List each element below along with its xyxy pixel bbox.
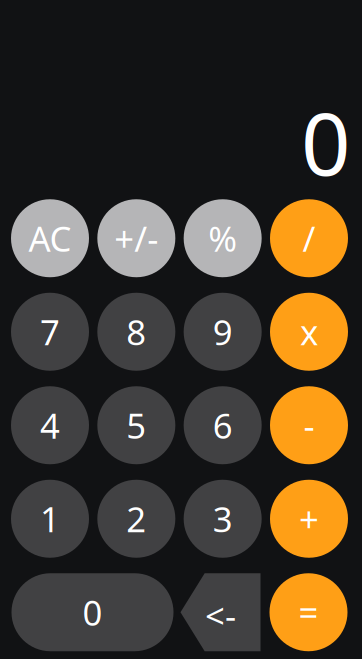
staticText: 3 <box>213 496 233 542</box>
button[interactable]: 0 <box>11 573 173 651</box>
button[interactable]: 2 <box>97 480 175 558</box>
button[interactable]: 7 <box>11 293 89 371</box>
staticText: +/- <box>114 215 158 261</box>
staticText: 6 <box>213 402 233 448</box>
button[interactable]: 8 <box>97 293 175 371</box>
staticText: x <box>300 309 318 355</box>
button[interactable]: 6 <box>184 386 262 464</box>
staticText: 1 <box>40 496 60 542</box>
staticText: <- <box>205 592 236 638</box>
staticText: / <box>302 215 315 261</box>
staticText: % <box>208 215 237 261</box>
button[interactable]: 4 <box>11 386 89 464</box>
button[interactable]: / <box>270 199 348 277</box>
button[interactable]: AC <box>11 199 89 277</box>
staticText: 0 <box>301 84 351 199</box>
staticText: 4 <box>40 402 60 448</box>
button[interactable]: - <box>270 386 348 464</box>
button[interactable]: = <box>269 573 347 651</box>
staticText: 7 <box>40 309 60 355</box>
button[interactable]: 3 <box>184 480 262 558</box>
staticText: 8 <box>126 309 146 355</box>
staticText: 5 <box>126 402 146 448</box>
staticText: 0 <box>82 589 102 635</box>
button[interactable]: 1 <box>11 480 89 558</box>
button[interactable]: 5 <box>97 386 175 464</box>
staticText: = <box>298 589 318 635</box>
button[interactable]: +/- <box>97 199 175 277</box>
button[interactable]: 9 <box>184 293 262 371</box>
button[interactable]: x <box>270 293 348 371</box>
button[interactable]: + <box>270 480 348 558</box>
staticText: + <box>299 496 319 542</box>
button[interactable]: Delete <box>180 573 260 651</box>
staticText: - <box>303 402 314 448</box>
staticText: AC <box>28 215 71 261</box>
button[interactable]: % <box>184 199 262 277</box>
staticText: 9 <box>213 309 233 355</box>
staticText: 2 <box>126 496 146 542</box>
